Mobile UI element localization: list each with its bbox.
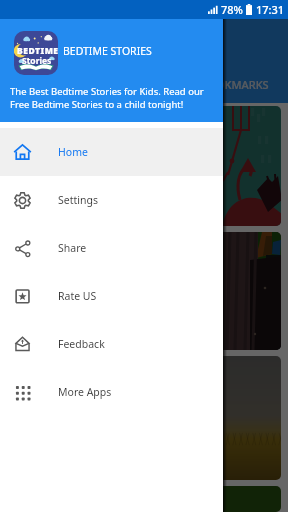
button[interactable] — [7, 106, 281, 226]
staticText: BOOKMARKS — [200, 77, 269, 92]
staticText: Rate US — [58, 289, 97, 303]
staticText: Stories — [22, 55, 52, 67]
staticText: Feedback — [58, 337, 105, 351]
staticText: BEDTIME — [17, 45, 58, 57]
button[interactable] — [7, 486, 281, 512]
button[interactable] — [7, 356, 281, 480]
button[interactable]: More Apps — [0, 368, 223, 416]
staticText: 78% — [221, 2, 243, 17]
staticText: Share — [58, 241, 87, 255]
staticText: 17:31 — [256, 2, 285, 17]
button[interactable]: Home — [0, 128, 223, 176]
staticText: More Apps — [58, 385, 112, 399]
button[interactable]: Feedback — [0, 320, 223, 368]
button[interactable] — [0, 0, 288, 512]
button[interactable]: Rate US — [0, 272, 223, 320]
staticText: The Best Bedtime Stories for Kids. Read … — [10, 85, 204, 111]
button[interactable]: Settings — [0, 176, 223, 224]
staticText: BEDTIME STORIES — [63, 44, 152, 58]
button[interactable] — [7, 232, 281, 350]
button[interactable]: Share — [0, 224, 223, 272]
staticText: Home — [58, 145, 88, 159]
staticText: Settings — [58, 193, 98, 207]
